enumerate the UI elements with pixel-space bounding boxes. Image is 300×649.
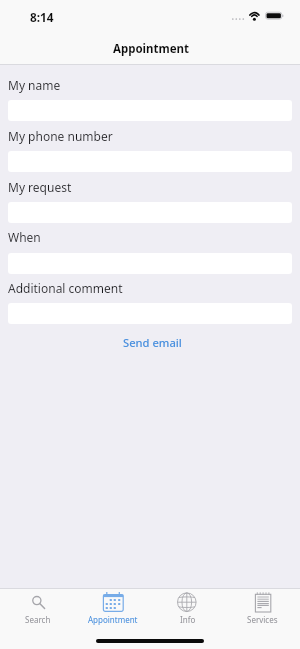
button[interactable]: Search (0, 589, 75, 633)
staticText: 8:14 (30, 9, 54, 25)
button[interactable]: Services (225, 589, 300, 633)
staticText: Services (247, 614, 278, 625)
staticText: Appointment (1, 41, 300, 57)
staticText: Send email (123, 335, 182, 350)
staticText: My request (8, 179, 72, 195)
staticText: My phone number (8, 128, 113, 144)
staticText: Search (25, 614, 51, 625)
other: Search (28, 591, 48, 611)
other: Appointment (103, 591, 123, 611)
staticText: When (8, 229, 41, 245)
staticText: My name (8, 77, 61, 93)
button[interactable]: Info (150, 589, 225, 633)
staticText: Additional comment (8, 280, 123, 296)
other: Services (253, 591, 273, 611)
staticText: Appointment (88, 614, 138, 625)
staticText: Info (180, 614, 196, 625)
button[interactable]: Appointment (75, 589, 150, 633)
button[interactable]: Send email (113, 332, 192, 353)
other: Info (178, 591, 198, 611)
